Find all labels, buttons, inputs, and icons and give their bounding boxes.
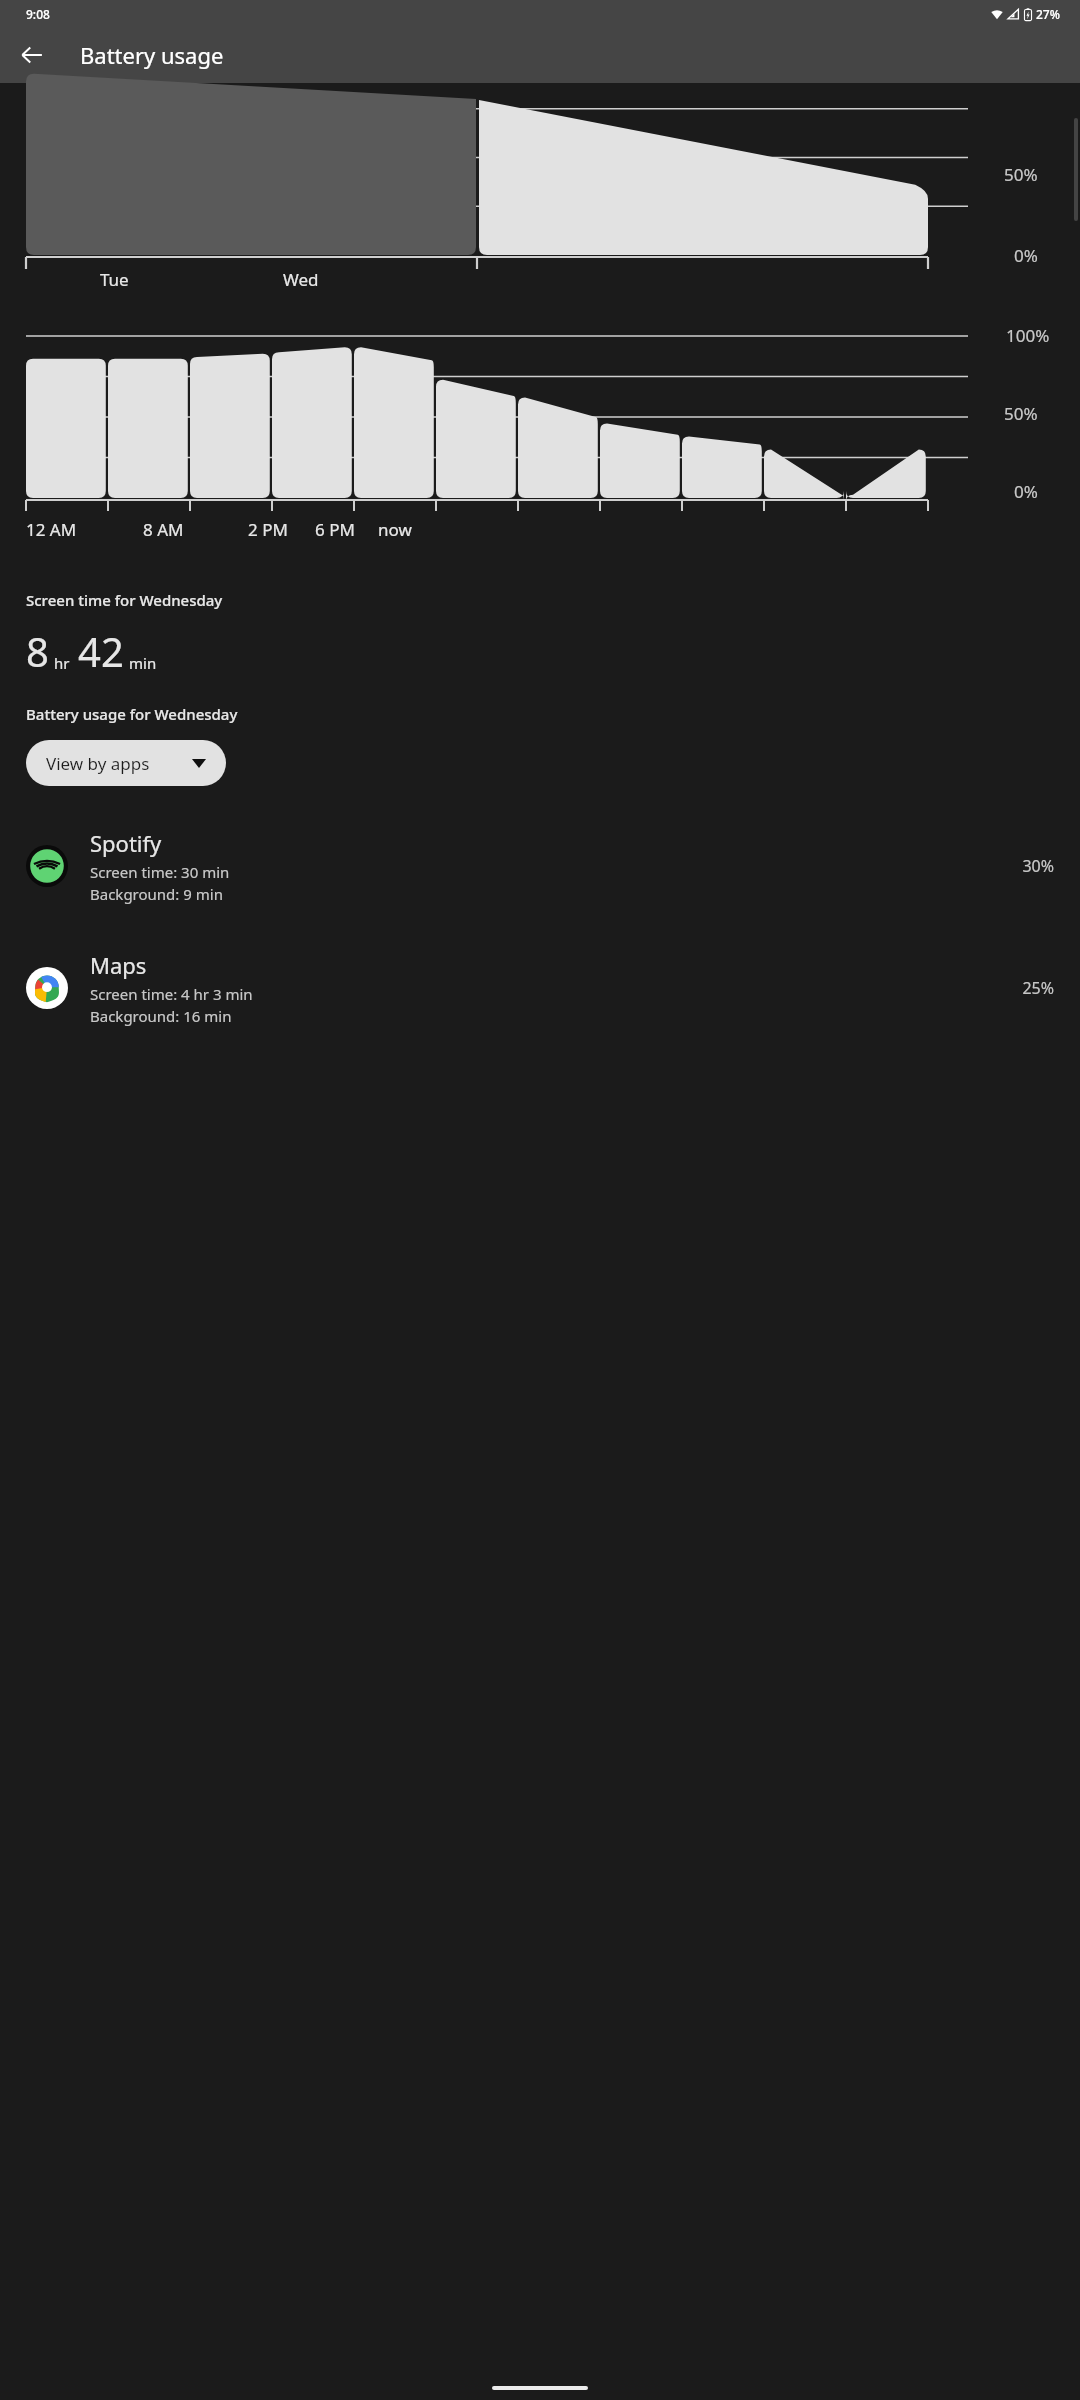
staticText: Tue bbox=[100, 268, 129, 291]
button[interactable]: View by apps bbox=[26, 740, 226, 786]
staticText: 50% bbox=[1004, 163, 1038, 186]
staticText: 27% bbox=[1036, 6, 1060, 22]
staticText: Screen time: 4 hr 3 min bbox=[90, 984, 253, 1004]
staticText: 100% bbox=[1006, 324, 1050, 347]
staticText: now bbox=[378, 518, 412, 541]
staticText: Background: 9 min bbox=[90, 884, 223, 904]
staticText: Spotify bbox=[90, 828, 162, 858]
staticText: 0% bbox=[1014, 480, 1038, 503]
staticText: 0% bbox=[1014, 244, 1038, 267]
staticText: 12 AM bbox=[26, 518, 77, 541]
staticText: Screen time: 30 min bbox=[90, 862, 230, 882]
staticText: 8 bbox=[26, 624, 49, 678]
staticText: 6 PM bbox=[315, 518, 355, 541]
staticText: 8 AM bbox=[143, 518, 184, 541]
staticText: Battery usage for Wednesday bbox=[26, 704, 238, 724]
staticText: 9:08 bbox=[26, 6, 50, 22]
button[interactable]: Spotify bbox=[0, 816, 1080, 916]
staticText: Screen time for Wednesday bbox=[26, 590, 223, 610]
staticText: hr bbox=[54, 653, 70, 673]
button[interactable]: Back bbox=[8, 31, 56, 79]
staticText: min bbox=[129, 653, 157, 673]
staticText: 25% bbox=[1022, 977, 1054, 999]
staticText: Maps bbox=[90, 950, 147, 980]
staticText: Wed bbox=[283, 268, 319, 291]
staticText: 30% bbox=[1022, 855, 1054, 877]
staticText: Background: 16 min bbox=[90, 1006, 232, 1026]
staticText: Battery usage bbox=[80, 40, 224, 70]
staticText: 50% bbox=[1004, 402, 1038, 425]
button[interactable]: Maps bbox=[0, 938, 1080, 1038]
staticText: 42 bbox=[78, 624, 124, 678]
staticText: View by apps bbox=[46, 752, 150, 775]
staticText: 2 PM bbox=[248, 518, 288, 541]
